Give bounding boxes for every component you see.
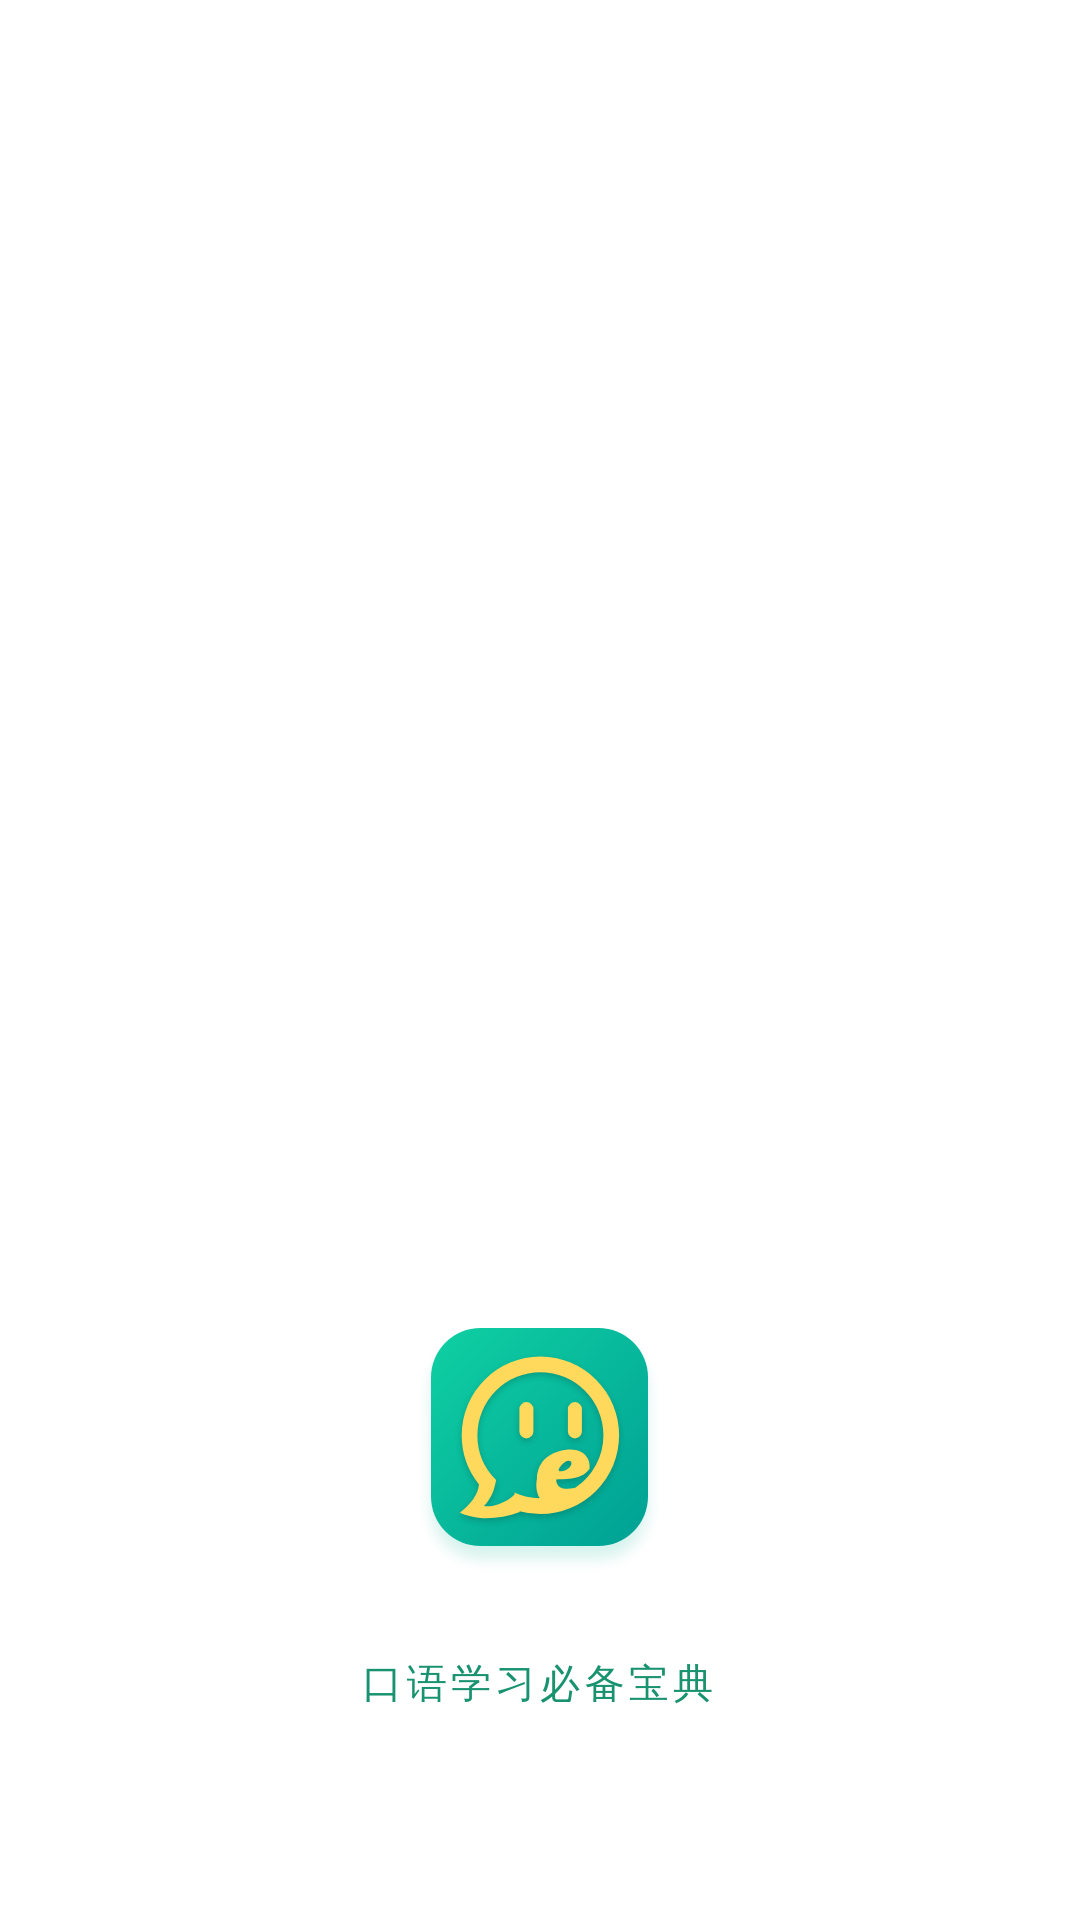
staticText: 口语学习必备宝典 <box>0 1658 1080 1920</box>
